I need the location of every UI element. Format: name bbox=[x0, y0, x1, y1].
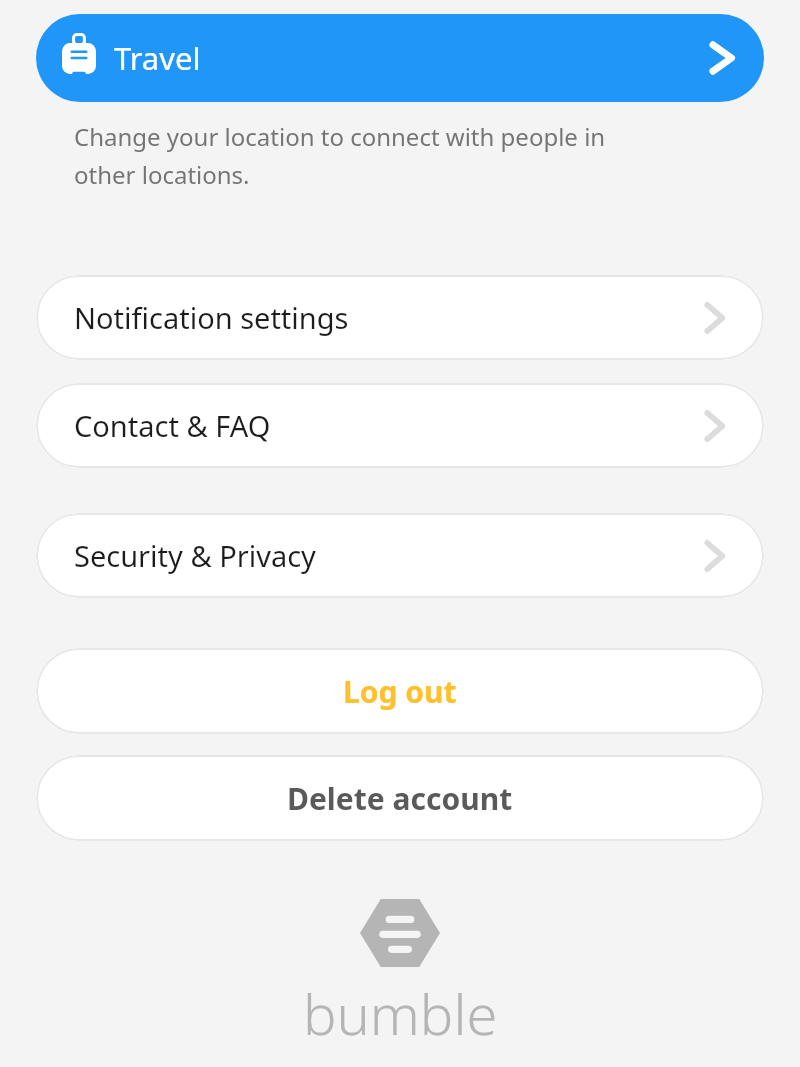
button[interactable]: Delete account bbox=[36, 755, 764, 841]
staticText: Notification settings bbox=[74, 298, 349, 337]
button[interactable]: Security & Privacy bbox=[36, 513, 764, 598]
staticText: bumble bbox=[303, 975, 498, 1051]
button[interactable]: Notification settings bbox=[36, 275, 764, 360]
staticText: Change your location to connect with peo… bbox=[74, 120, 640, 191]
staticText: Log out bbox=[343, 671, 457, 712]
staticText: Contact & FAQ bbox=[74, 406, 271, 445]
button[interactable]: Log out bbox=[36, 648, 764, 734]
staticText: Security & Privacy bbox=[74, 536, 316, 575]
button[interactable]: Travel bbox=[36, 14, 764, 102]
staticText: Delete account bbox=[287, 778, 513, 819]
button[interactable]: Contact & FAQ bbox=[36, 383, 764, 468]
staticText: Travel bbox=[114, 37, 201, 79]
